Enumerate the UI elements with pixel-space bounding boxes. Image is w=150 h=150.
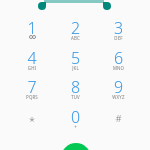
button[interactable]: 7 [10, 76, 54, 102]
staticText: WXYZ [97, 94, 140, 100]
button[interactable]: # [97, 106, 140, 132]
button[interactable]: 2 [54, 17, 97, 43]
staticText: 9 [97, 76, 140, 98]
staticText: # [97, 112, 140, 125]
staticText: TUV [54, 94, 97, 100]
staticText: + [54, 124, 97, 130]
staticText: 1 [10, 17, 54, 39]
button[interactable]: Call [61, 143, 91, 150]
staticText: ABC [54, 35, 97, 41]
staticText: MNO [97, 65, 140, 71]
button[interactable]: * [10, 106, 54, 132]
staticText: 0 [54, 106, 97, 128]
staticText: 6 [97, 47, 140, 69]
button[interactable]: 8 [54, 76, 97, 102]
staticText: DEF [97, 35, 140, 41]
button[interactable]: 1 [10, 17, 54, 43]
staticText: PQRS [10, 94, 54, 100]
staticText: 5 [54, 47, 97, 69]
staticText: 2 [54, 17, 97, 39]
button[interactable]: 0 [54, 106, 97, 132]
button[interactable]: 6 [97, 47, 140, 73]
staticText: 3 [97, 17, 140, 39]
staticText: 4 [10, 47, 54, 69]
button[interactable]: 3 [97, 17, 140, 43]
staticText: 7 [10, 76, 54, 98]
button[interactable]: 4 [10, 47, 54, 73]
staticText: * [10, 113, 54, 128]
button[interactable]: 9 [97, 76, 140, 102]
staticText: GHI [10, 65, 54, 71]
button[interactable]: 5 [54, 47, 97, 73]
staticText: 8 [54, 76, 97, 98]
staticText: JKL [54, 65, 97, 71]
